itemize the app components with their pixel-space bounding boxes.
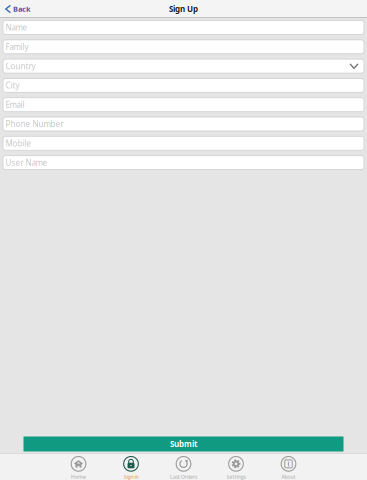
staticText: i: [287, 459, 289, 468]
staticText: Phone Number: [5, 119, 63, 129]
staticText: City: [5, 80, 19, 91]
staticText: Email: [5, 99, 24, 110]
staticText: Home: [71, 473, 86, 480]
staticText: Name: [5, 22, 27, 33]
staticText: Sign Up: [169, 4, 198, 14]
button[interactable]: Settings: [210, 452, 262, 480]
button[interactable]: Back: [0, 1, 38, 17]
button[interactable]: Home: [52, 452, 105, 480]
button[interactable]: i: [262, 452, 315, 480]
button[interactable]: Last Orders: [157, 452, 210, 480]
staticText: Settings: [226, 473, 245, 480]
staticText: Back: [13, 4, 31, 14]
staticText: Family: [5, 41, 28, 52]
button[interactable]: Submit: [23, 436, 343, 451]
staticText: Country: [5, 61, 35, 72]
staticText: About: [281, 473, 295, 480]
staticText: User Name: [5, 157, 47, 168]
staticText: Submit: [170, 439, 197, 449]
staticText: Sign in: [123, 473, 138, 480]
button[interactable]: Sign in: [105, 452, 157, 480]
staticText: Last Orders: [170, 473, 197, 480]
staticText: Mobile: [5, 138, 31, 149]
